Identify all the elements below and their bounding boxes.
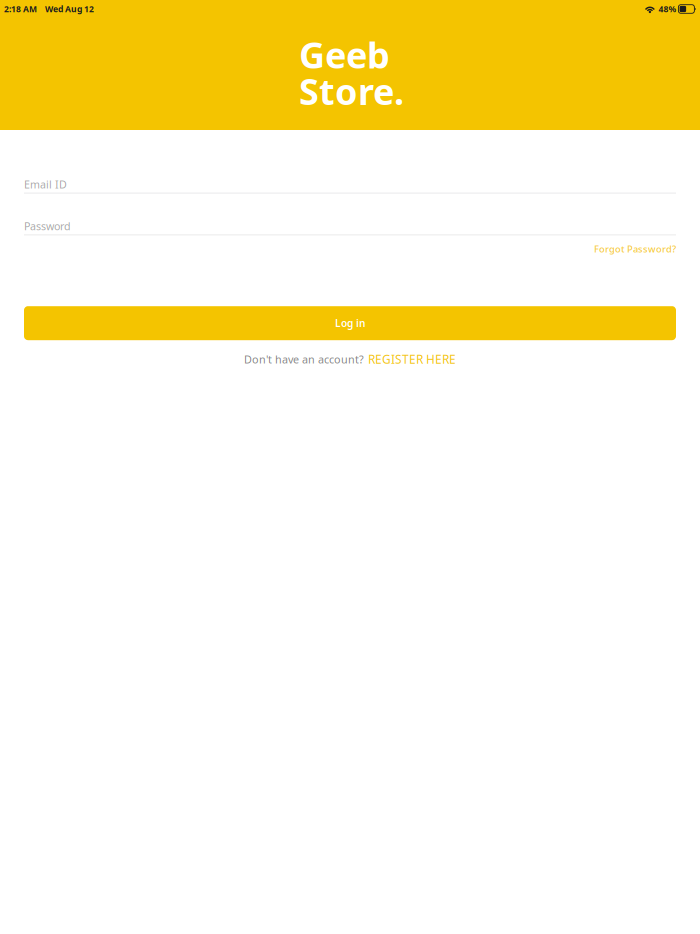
button[interactable]: Forgot Password? — [594, 240, 676, 257]
staticText: Log in — [335, 316, 365, 330]
button[interactable]: Log in — [24, 306, 676, 340]
staticText: Password — [24, 219, 71, 233]
staticText: Email ID — [24, 177, 67, 191]
staticText: Geeb — [299, 30, 390, 79]
button[interactable]: REGISTER HERE — [368, 351, 456, 367]
staticText: 48% — [658, 3, 676, 15]
staticText: REGISTER HERE — [368, 351, 456, 367]
staticText: Don't have an account? — [244, 352, 364, 367]
staticText: Forgot Password? — [594, 242, 676, 255]
staticText: Store. — [299, 66, 404, 115]
staticText: Wed Aug 12 — [45, 3, 94, 15]
staticText: 2:18 AM — [4, 3, 37, 15]
button[interactable]: Password — [24, 219, 676, 235]
button[interactable]: Email ID — [24, 177, 676, 194]
